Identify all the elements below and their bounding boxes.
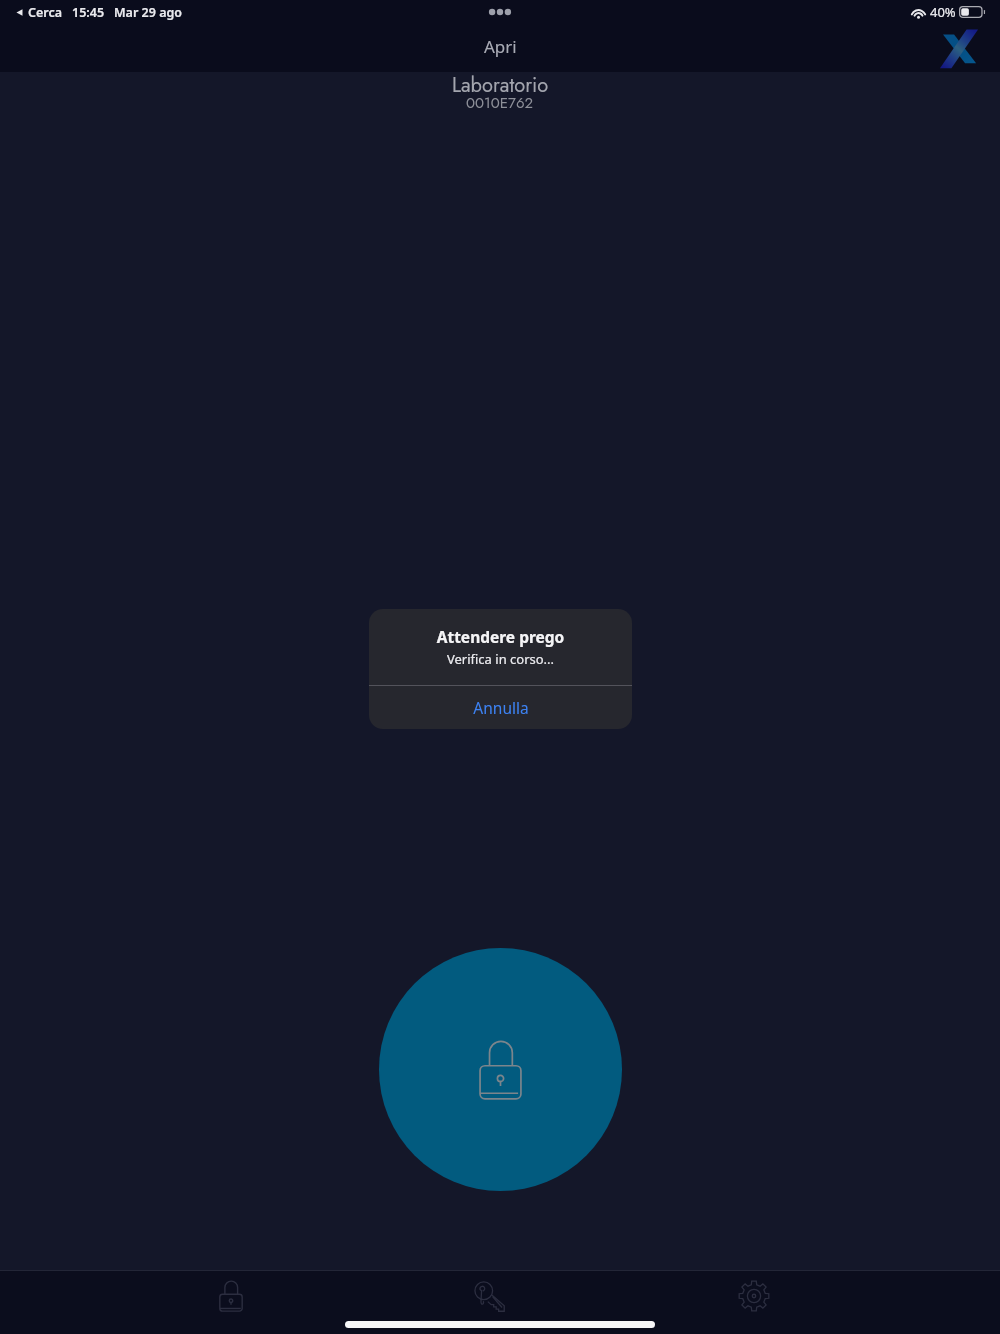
button[interactable]: Apri serratura	[379, 948, 622, 1191]
staticText: Cerca	[28, 4, 63, 21]
staticText: Apri	[484, 35, 517, 58]
staticText: Laboratorio	[452, 71, 549, 100]
button[interactable]: Serrature	[181, 1273, 281, 1319]
staticText: 40%	[930, 3, 956, 21]
staticText: Mar 29 ago	[114, 4, 183, 21]
staticText: Verifica in corso...	[369, 650, 632, 668]
button[interactable]: Chiavi	[439, 1273, 539, 1319]
button[interactable]: Impostazioni	[704, 1273, 804, 1319]
staticText: Annulla	[473, 697, 529, 718]
staticText: Attendere prego	[369, 626, 632, 647]
staticText: 15:45	[72, 4, 105, 21]
button[interactable]: Annulla	[369, 686, 632, 729]
staticText: 0010E762	[466, 92, 534, 114]
